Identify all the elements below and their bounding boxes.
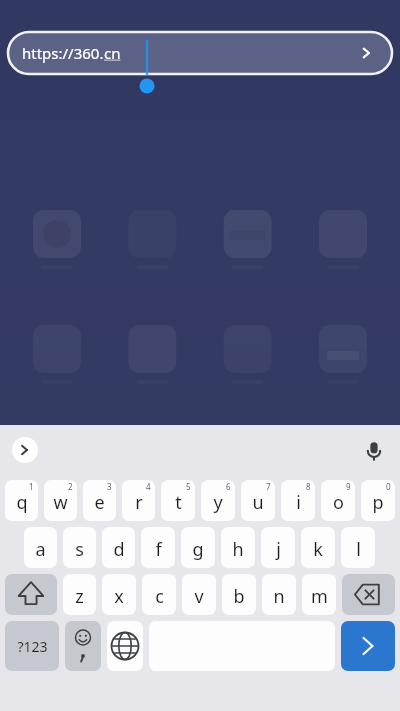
button[interactable]: v [182, 574, 216, 615]
staticText: v [194, 584, 204, 609]
button[interactable]: h [221, 527, 255, 568]
staticText: 3 [107, 481, 112, 492]
button[interactable]: c [142, 574, 176, 615]
staticText: s [75, 537, 84, 562]
staticText: 6 [226, 481, 231, 492]
staticText: 8 [306, 481, 311, 492]
staticText: z [75, 584, 84, 609]
button[interactable]: g [181, 527, 215, 568]
staticText: c [155, 584, 164, 609]
button[interactable]: j [261, 527, 295, 568]
staticText: y [213, 490, 223, 515]
staticText: a [35, 537, 46, 562]
button[interactable]: e [83, 480, 116, 521]
staticText: r [135, 490, 143, 515]
button[interactable]: p [361, 480, 395, 521]
button[interactable]: o [321, 480, 355, 521]
staticText: ?123 [17, 637, 48, 656]
staticText: q [16, 490, 28, 515]
staticText: w [53, 490, 68, 515]
button[interactable]: d [102, 527, 135, 568]
staticText: https://360. [22, 43, 104, 63]
staticText: p [372, 490, 384, 515]
staticText: x [114, 584, 124, 609]
staticText: h [232, 537, 244, 562]
button[interactable]: ?123 [5, 621, 59, 671]
button[interactable]: Backspace [342, 574, 395, 615]
button[interactable]: f [141, 527, 175, 568]
staticText: n [273, 584, 285, 609]
button[interactable]: w [44, 480, 77, 521]
button[interactable]: a [24, 527, 57, 568]
button[interactable]: s [63, 527, 96, 568]
staticText: f [155, 537, 162, 562]
staticText: m [311, 584, 328, 609]
button[interactable]: q [5, 480, 38, 521]
staticText: u [252, 490, 264, 515]
button[interactable]: k [301, 527, 335, 568]
button[interactable]: t [161, 480, 195, 521]
staticText: 5 [186, 481, 191, 492]
button[interactable]: Shift [5, 574, 57, 615]
staticText: i [296, 490, 301, 515]
other: Go [356, 42, 378, 64]
button[interactable]: m [302, 574, 336, 615]
button[interactable]: r [122, 480, 155, 521]
staticText: b [233, 584, 245, 609]
staticText: k [313, 537, 323, 562]
staticText: g [192, 537, 204, 562]
button[interactable]: Emoji and comma [65, 621, 101, 671]
staticText: cn [104, 43, 121, 63]
staticText: e [94, 490, 105, 515]
staticText: 4 [146, 481, 151, 492]
staticText: 7 [266, 481, 271, 492]
button[interactable]: Voice input [360, 436, 388, 464]
button[interactable]: n [262, 574, 296, 615]
staticText: 9 [346, 481, 351, 492]
button[interactable]: l [341, 527, 375, 568]
staticText: 1 [29, 481, 34, 492]
staticText: 0 [386, 481, 391, 492]
button[interactable]: Change language [107, 621, 143, 671]
button[interactable]: i [281, 480, 315, 521]
button[interactable]: https://360. [8, 32, 392, 74]
staticText: j [276, 537, 281, 562]
button[interactable]: z [63, 574, 96, 615]
staticText: t [175, 490, 182, 515]
button[interactable]: u [241, 480, 275, 521]
button[interactable]: y [201, 480, 235, 521]
staticText: d [113, 537, 125, 562]
staticText: 2 [68, 481, 73, 492]
button[interactable]: More suggestions [12, 437, 38, 463]
button[interactable]: x [102, 574, 136, 615]
staticText: o [333, 490, 344, 515]
button[interactable]: b [222, 574, 256, 615]
button[interactable]: Enter [341, 621, 395, 671]
staticText: l [356, 537, 361, 562]
